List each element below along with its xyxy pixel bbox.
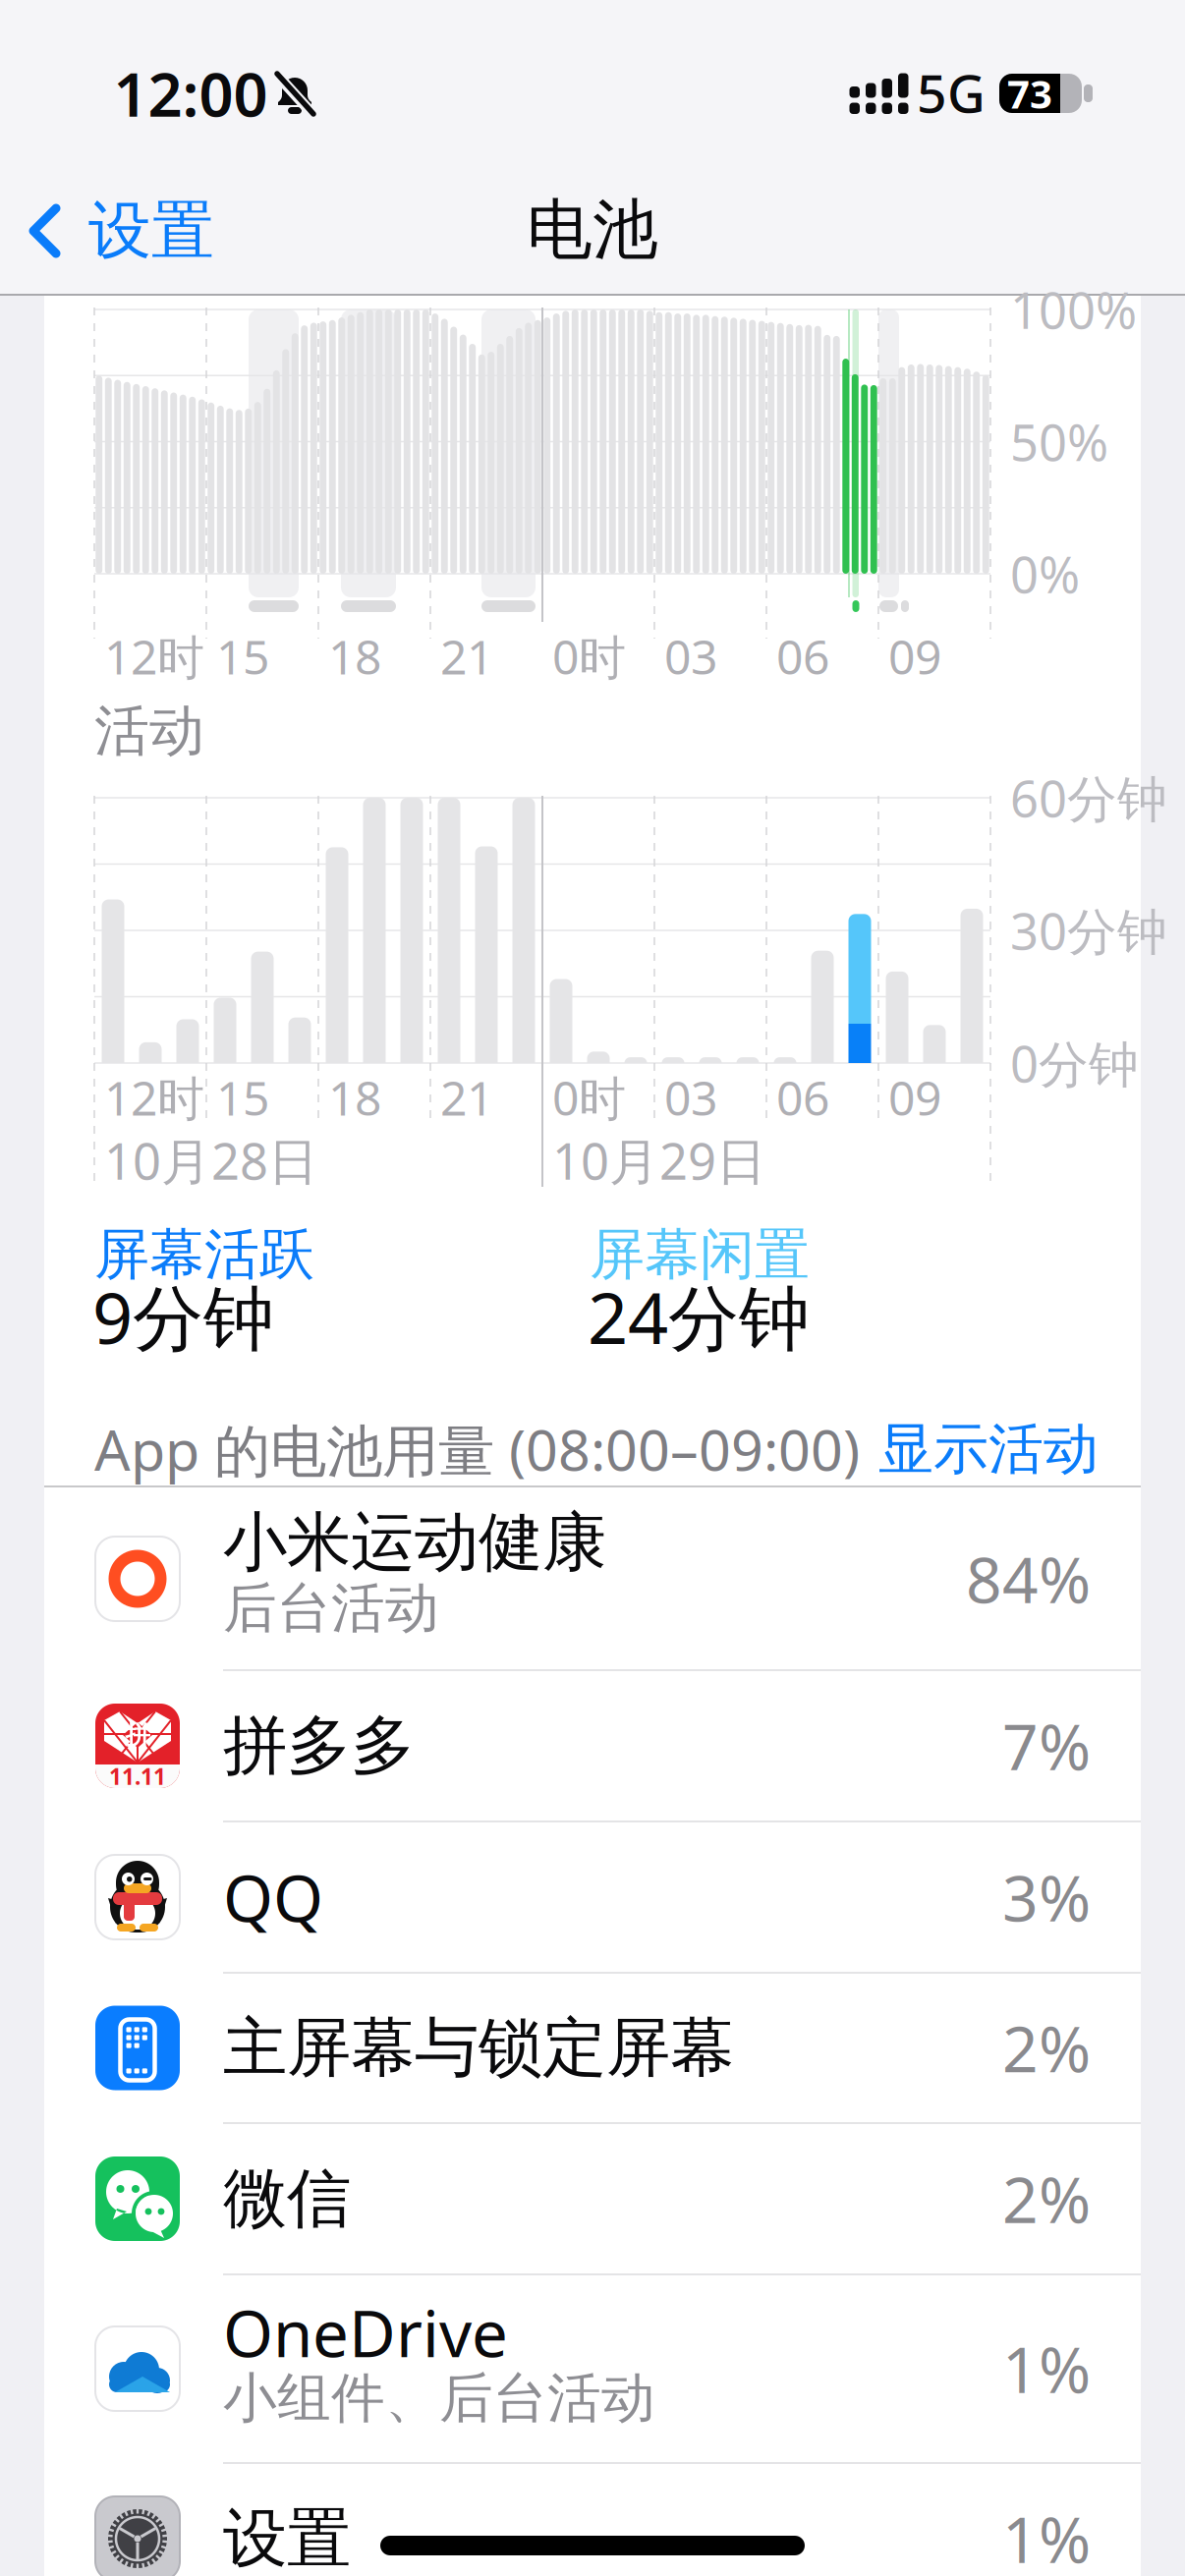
staticText: 30分钟 [1010, 897, 1167, 963]
staticText: 活动 [94, 697, 204, 765]
staticText: 2% [1002, 2157, 1091, 2240]
staticText: 0时 [552, 625, 626, 688]
staticText: 2% [1002, 2006, 1091, 2090]
staticText: 7% [1002, 1704, 1091, 1788]
staticText: 09 [888, 1066, 941, 1129]
staticText: OneDrive [223, 2290, 508, 2375]
staticText: 12时 [104, 1066, 204, 1129]
staticText: 06 [776, 1066, 829, 1129]
button[interactable]: QQ [44, 1821, 1141, 1973]
staticText: 3% [1002, 1855, 1091, 1939]
staticText: 小米运动健康 [223, 1503, 606, 1582]
button[interactable]: 设置 [44, 2463, 1141, 2576]
staticText: 显示活动 [878, 1415, 1099, 1483]
button[interactable]: 拼 [44, 1670, 1141, 1821]
button[interactable]: 显示活动 [804, 1415, 1099, 1484]
staticText: 10月29日 [552, 1127, 766, 1193]
staticText: 0时 [552, 1066, 626, 1129]
button[interactable]: 主屏幕与锁定屏幕 [44, 1973, 1141, 2123]
staticText: 10月28日 [104, 1127, 318, 1193]
staticText: 73 [1007, 67, 1052, 119]
button[interactable]: 返回设置 [0, 182, 226, 280]
staticText: 11.11 [109, 1761, 166, 1791]
staticText: 0分钟 [1010, 1030, 1139, 1096]
staticText: 小组件、后台活动 [223, 2365, 655, 2431]
staticText: 21 [440, 1066, 493, 1129]
staticText: 21 [440, 625, 493, 688]
staticText: 84% [966, 1537, 1091, 1621]
staticText: 15 [216, 1066, 269, 1129]
button[interactable]: 小米运动健康 [44, 1487, 1141, 1670]
staticText: 03 [664, 625, 717, 688]
staticText: 设置 [223, 2499, 351, 2576]
staticText: 屏幕活跃 [94, 1221, 314, 1288]
button[interactable]: 微信 [44, 2123, 1141, 2274]
staticText: 微信 [223, 2159, 351, 2238]
staticText: 12时 [104, 625, 204, 688]
staticText: 电池 [527, 190, 658, 270]
staticText: 主屏幕与锁定屏幕 [223, 2009, 734, 2087]
staticText: 50% [1010, 409, 1108, 475]
staticText: 1% [1002, 2327, 1091, 2410]
staticText: 1% [1002, 2497, 1091, 2576]
staticText: 后台活动 [223, 1575, 439, 1641]
staticText: 9分钟 [92, 1270, 274, 1363]
staticText: 09 [888, 625, 941, 688]
staticText: 设置 [88, 192, 214, 269]
staticText: 12:00 [113, 53, 268, 133]
staticText: 24分钟 [588, 1270, 810, 1363]
staticText: 60分钟 [1010, 765, 1167, 831]
staticText: 5G [917, 58, 986, 127]
staticText: 0% [1010, 541, 1080, 607]
button[interactable]: OneDrive [44, 2274, 1141, 2463]
staticText: 屏幕闲置 [590, 1221, 810, 1288]
staticText: 18 [328, 625, 381, 688]
staticText: 15 [216, 625, 269, 688]
staticText: 03 [664, 1066, 717, 1129]
staticText: 06 [776, 625, 829, 688]
staticText: 拼多多 [223, 1706, 415, 1785]
staticText: App 的电池用量 (08:00–09:00) [94, 1412, 860, 1487]
staticText: 18 [328, 1066, 381, 1129]
staticText: 拼 [125, 1720, 150, 1750]
staticText: 100% [1010, 276, 1137, 343]
staticText: QQ [223, 1854, 323, 1940]
